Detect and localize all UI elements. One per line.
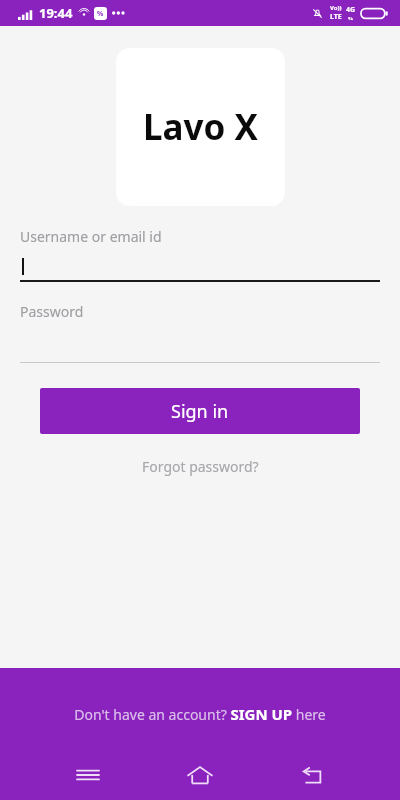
staticText: Don't have an account? SIGN UP here	[74, 704, 326, 724]
button[interactable]: Lavo X	[116, 48, 285, 206]
button[interactable]: Menu	[64, 751, 112, 799]
staticText: Lavo X	[143, 103, 258, 151]
button[interactable]	[20, 256, 380, 280]
staticText: Password	[20, 302, 84, 321]
staticText: ▾▴	[348, 15, 354, 21]
staticText: 4G	[346, 5, 356, 15]
button[interactable]: Forgot password?	[134, 454, 267, 479]
button[interactable]: Sign in	[40, 388, 360, 434]
staticText: 19:44	[39, 4, 73, 22]
staticText: Username or email id	[20, 227, 162, 246]
button[interactable]: Don't have an account? SIGN UP here	[64, 700, 336, 728]
staticText: LTE	[330, 12, 342, 22]
staticText: Forgot password?	[142, 457, 259, 476]
staticText: Vo))	[330, 4, 342, 12]
button[interactable]: Home	[176, 751, 224, 799]
button[interactable]: Back	[288, 751, 336, 799]
staticText: Sign in	[171, 399, 229, 424]
staticText: %	[97, 9, 104, 19]
